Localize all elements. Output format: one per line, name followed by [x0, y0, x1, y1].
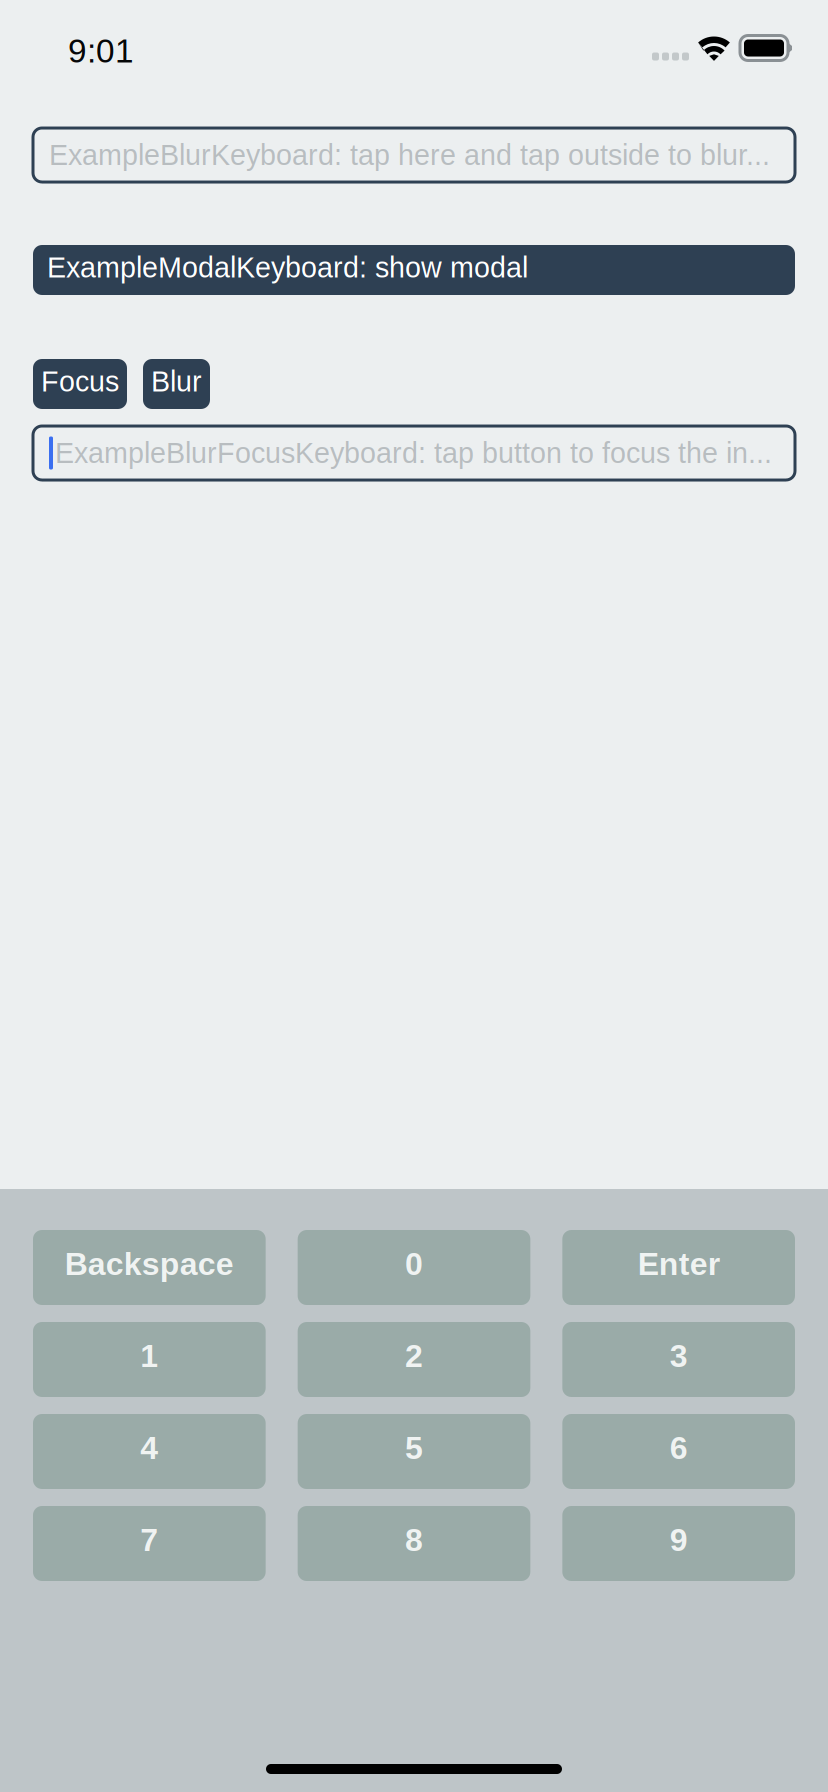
button[interactable]: 9	[562, 1506, 795, 1581]
button[interactable]: 3	[562, 1322, 795, 1397]
button[interactable]: 5	[298, 1414, 530, 1489]
button[interactable]: 0	[298, 1230, 530, 1305]
staticText: 6	[670, 1430, 688, 1466]
staticText: Focus	[41, 365, 119, 397]
staticText: Backspace	[65, 1246, 234, 1282]
button[interactable]: Focus	[33, 359, 127, 409]
button[interactable]: 4	[33, 1414, 266, 1489]
staticText: Enter	[638, 1246, 720, 1282]
button[interactable]: ExampleBlurFocusKeyboard: tap button to …	[33, 426, 795, 480]
button[interactable]: 8	[298, 1506, 530, 1581]
staticText: ExampleBlurKeyboard: tap here and tap ou…	[49, 139, 770, 171]
staticText: 3	[670, 1338, 688, 1374]
staticText: 1	[140, 1338, 158, 1374]
staticText: ExampleModalKeyboard: show modal	[47, 251, 528, 283]
button[interactable]: 2	[298, 1322, 530, 1397]
button[interactable]: 7	[33, 1506, 266, 1581]
staticText: 8	[405, 1522, 423, 1558]
staticText: 2	[405, 1338, 423, 1374]
staticText: 4	[140, 1430, 158, 1466]
staticText: 9	[670, 1522, 688, 1558]
button[interactable]: Backspace	[33, 1230, 266, 1305]
staticText: ExampleBlurFocusKeyboard: tap button to …	[55, 437, 772, 469]
staticText: Blur	[151, 365, 202, 397]
staticText: 5	[405, 1430, 423, 1466]
staticText: 7	[140, 1522, 158, 1558]
button[interactable]: ExampleModalKeyboard: show modal	[33, 245, 795, 295]
button[interactable]: 6	[562, 1414, 795, 1489]
button[interactable]: Enter	[562, 1230, 795, 1305]
button[interactable]: 1	[33, 1322, 266, 1397]
staticText: 9:01	[68, 32, 134, 70]
button[interactable]: ExampleBlurKeyboard: tap here and tap ou…	[33, 128, 795, 182]
staticText: 0	[405, 1246, 423, 1282]
button[interactable]: Blur	[143, 359, 210, 409]
